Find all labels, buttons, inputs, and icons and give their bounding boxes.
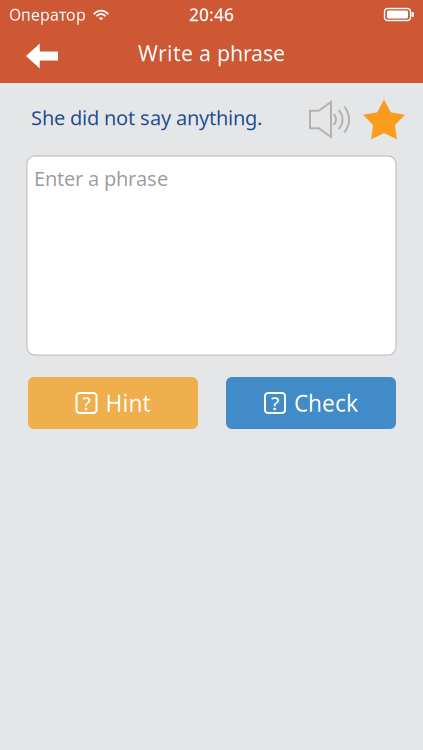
staticText: Enter a phrase xyxy=(34,165,168,192)
button[interactable]: Enter a phrase xyxy=(0,156,423,355)
staticText: Hint xyxy=(105,388,150,418)
button[interactable]: Play audio xyxy=(307,94,353,145)
staticText: She did not say anything. xyxy=(31,104,262,131)
staticText: ? xyxy=(271,391,279,415)
staticText: Check xyxy=(294,388,358,418)
staticText: 20:46 xyxy=(189,3,234,26)
staticText: Write a phrase xyxy=(138,39,285,67)
staticText: Оператор xyxy=(9,4,86,25)
button[interactable]: ? xyxy=(28,377,198,429)
staticText: ? xyxy=(82,391,90,415)
button[interactable]: ? xyxy=(226,377,396,429)
button[interactable]: Back xyxy=(0,29,74,82)
button[interactable]: Favorite xyxy=(353,92,423,146)
